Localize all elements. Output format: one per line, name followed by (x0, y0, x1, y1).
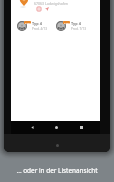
button[interactable]: List view (37, 7, 41, 11)
staticText: Prod. 4/13 (32, 27, 47, 31)
button[interactable]: 3 Std (11, 20, 50, 31)
staticText: 3 Std (64, 21, 70, 24)
button[interactable]: Navigate (45, 7, 49, 11)
staticText: 67063 Ludwigshafen (34, 1, 69, 6)
button[interactable]: Home (49, 121, 63, 134)
staticText: Typ 4 (32, 21, 42, 26)
staticText: 3 Std (25, 21, 31, 24)
staticText: ... oder in der Listenansicht (16, 166, 98, 175)
button[interactable]: Back (25, 121, 39, 134)
staticText: Typ 4 (71, 21, 81, 26)
button[interactable]: 3 Std (50, 20, 89, 31)
staticText: Prod. 7/13 (71, 27, 86, 31)
button[interactable]: Recent apps (74, 121, 88, 134)
